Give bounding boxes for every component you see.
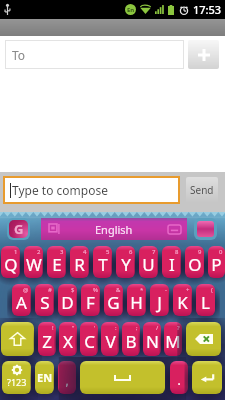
button[interactable]: F	[81, 284, 100, 316]
button[interactable]: .	[170, 361, 188, 394]
button[interactable]: Space	[80, 361, 165, 394]
staticText: EN	[37, 370, 53, 385]
button[interactable]: O	[185, 246, 204, 278]
staticText: V	[105, 330, 116, 353]
staticText: P	[211, 253, 222, 276]
staticText: U	[142, 253, 155, 276]
staticText: .	[177, 372, 181, 388]
staticText: Y	[121, 253, 131, 276]
staticText: @	[23, 286, 29, 294]
button[interactable]: Q	[1, 246, 20, 278]
staticText: B	[125, 330, 137, 353]
button[interactable]: B	[122, 322, 140, 356]
staticText: ?123	[7, 376, 27, 388]
staticText: -	[165, 286, 167, 294]
staticText: /	[156, 324, 159, 332]
staticText: A	[16, 291, 27, 314]
button[interactable]: GO Keyboard menu	[9, 220, 28, 238]
button[interactable]: H	[127, 284, 146, 316]
staticText: T	[98, 253, 108, 276]
staticText: "	[72, 324, 75, 332]
button[interactable]: T	[93, 246, 112, 278]
staticText: Z	[42, 330, 52, 353]
button[interactable]: N	[143, 322, 161, 356]
staticText: W	[26, 253, 42, 276]
button[interactable]: E	[47, 246, 66, 278]
staticText: N	[146, 330, 159, 353]
staticText: ;	[136, 324, 138, 332]
button[interactable]: Send	[186, 177, 218, 203]
staticText: 4	[83, 248, 87, 256]
button[interactable]: L	[196, 284, 215, 316]
staticText: ,	[65, 372, 69, 388]
staticText: '	[94, 324, 96, 332]
staticText: $	[71, 286, 75, 294]
button[interactable]: To	[6, 41, 183, 68]
staticText: 9	[198, 248, 202, 256]
button[interactable]: R	[70, 246, 89, 278]
staticText: S	[40, 291, 50, 314]
button[interactable]: A	[12, 284, 31, 316]
button[interactable]: X	[59, 322, 77, 356]
staticText: H	[130, 291, 143, 314]
button[interactable]: EN	[35, 361, 54, 394]
button[interactable]: C	[80, 322, 98, 356]
staticText: J	[157, 291, 162, 314]
button[interactable]: P	[208, 246, 225, 278]
staticText: En	[127, 6, 135, 14]
button[interactable]: S	[35, 284, 54, 316]
staticText: F	[86, 291, 95, 314]
staticText: English	[95, 222, 133, 237]
button[interactable]: M	[164, 322, 182, 356]
button[interactable]: J	[150, 284, 169, 316]
staticText: L	[201, 291, 210, 314]
button[interactable]: Backspace	[186, 322, 221, 356]
staticText: ?	[177, 324, 180, 332]
button[interactable]: V	[101, 322, 119, 356]
button[interactable]: I	[162, 246, 181, 278]
button[interactable]: Type to compose	[5, 178, 178, 202]
button[interactable]: Z	[38, 322, 56, 356]
staticText: Type to compose	[12, 182, 108, 198]
button[interactable]: Change theme	[197, 221, 214, 237]
button[interactable]: ,	[58, 361, 76, 394]
staticText: 5	[106, 248, 110, 256]
staticText: 7	[152, 248, 156, 256]
staticText: K	[177, 291, 188, 314]
staticText: 1	[14, 248, 18, 256]
staticText: :	[115, 324, 117, 332]
button[interactable]: W	[24, 246, 43, 278]
button[interactable]: U	[139, 246, 158, 278]
staticText: 8	[175, 248, 179, 256]
staticText: Send	[190, 183, 214, 197]
staticText: G	[14, 220, 24, 238]
staticText: 2	[37, 248, 41, 256]
button[interactable]: D	[58, 284, 77, 316]
button[interactable]: Enter	[192, 361, 222, 394]
staticText: 17:53	[193, 2, 222, 17]
staticText: 3	[60, 248, 64, 256]
button[interactable]: Y	[116, 246, 135, 278]
staticText: G	[107, 291, 120, 314]
staticText: X	[63, 330, 73, 353]
button[interactable]: English	[41, 218, 187, 240]
button[interactable]: G	[104, 284, 123, 316]
button[interactable]: Add recipient	[188, 40, 219, 69]
staticText: E	[52, 253, 62, 276]
staticText: #	[48, 286, 52, 294]
button[interactable]: Symbols	[2, 361, 31, 394]
staticText: (	[211, 286, 213, 294]
button[interactable]: K	[173, 284, 192, 316]
staticText: C	[84, 330, 95, 353]
button[interactable]: Shift	[1, 322, 34, 356]
staticText: +	[186, 286, 190, 294]
staticText: R	[74, 253, 85, 276]
staticText: 6	[129, 248, 133, 256]
staticText: O	[188, 253, 202, 276]
staticText: %	[93, 286, 98, 294]
staticText: D	[61, 291, 74, 314]
staticText: Q	[4, 253, 18, 276]
staticText: I	[169, 253, 175, 276]
staticText: To	[12, 47, 26, 63]
staticText: &	[116, 286, 121, 294]
